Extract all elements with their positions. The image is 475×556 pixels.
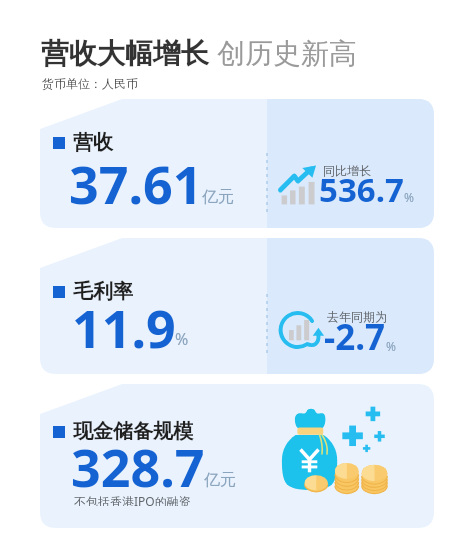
staticText: 亿元 — [204, 470, 236, 490]
staticText: 货币单位：人民币 — [42, 76, 138, 91]
staticText: 不包括香港IPO的融资 — [74, 493, 191, 506]
staticText: 毛利率 — [73, 279, 133, 304]
staticText: % — [175, 328, 189, 350]
staticText: 536.7 — [319, 167, 404, 212]
staticText: % — [404, 189, 414, 205]
staticText: -2.7 — [324, 313, 386, 361]
button[interactable]: 毛利率 — [40, 238, 434, 374]
staticText: % — [386, 338, 396, 354]
button[interactable]: 营收 — [40, 99, 434, 228]
button[interactable]: 现金储备规模 — [40, 384, 434, 528]
staticText: 营收大幅增长 — [41, 36, 209, 71]
staticText: 营收 — [73, 130, 113, 155]
staticText: 创历史新高 — [217, 36, 357, 71]
staticText: 11.9 — [72, 292, 176, 362]
staticText: 37.61 — [69, 148, 203, 219]
staticText: 现金储备规模 — [73, 419, 193, 444]
staticText: 328.7 — [71, 431, 205, 502]
staticText: 去年同期为 — [327, 309, 387, 324]
staticText: 亿元 — [202, 187, 234, 207]
staticText: 同比增长 — [323, 163, 371, 178]
